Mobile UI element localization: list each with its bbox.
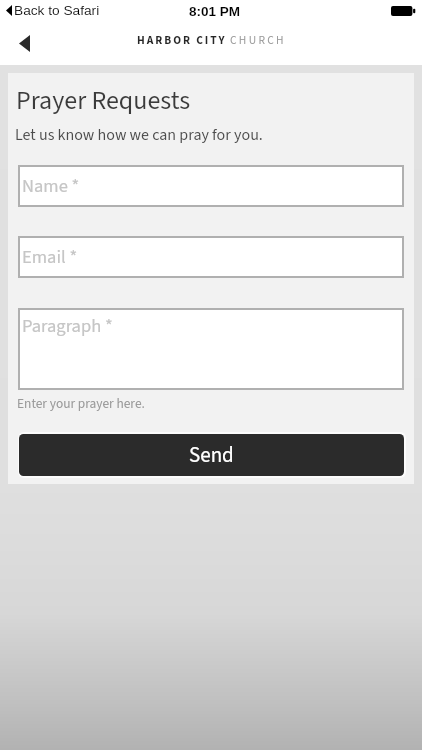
button[interactable]: Back <box>9 28 40 59</box>
button[interactable]: Paragraph * <box>18 308 404 390</box>
button[interactable]: Email * <box>18 236 404 278</box>
button[interactable]: Send <box>19 434 404 476</box>
staticText: Paragraph * <box>22 313 113 339</box>
staticText: Let us know how we can pray for you. <box>15 124 263 147</box>
staticText: Enter your prayer here. <box>17 394 145 413</box>
staticText: HARBOR CITY <box>137 32 227 48</box>
staticText: Name * <box>22 173 80 199</box>
button[interactable]: Name * <box>18 165 404 207</box>
staticText: Email * <box>22 244 78 270</box>
staticText: Prayer Requests <box>16 82 191 119</box>
staticText: Send <box>189 440 234 470</box>
staticText: 8:01 PM <box>189 4 241 19</box>
staticText: CHURCH <box>230 32 286 48</box>
button[interactable]: Back to Safari <box>6 3 100 18</box>
staticText: Back to Safari <box>14 3 100 18</box>
